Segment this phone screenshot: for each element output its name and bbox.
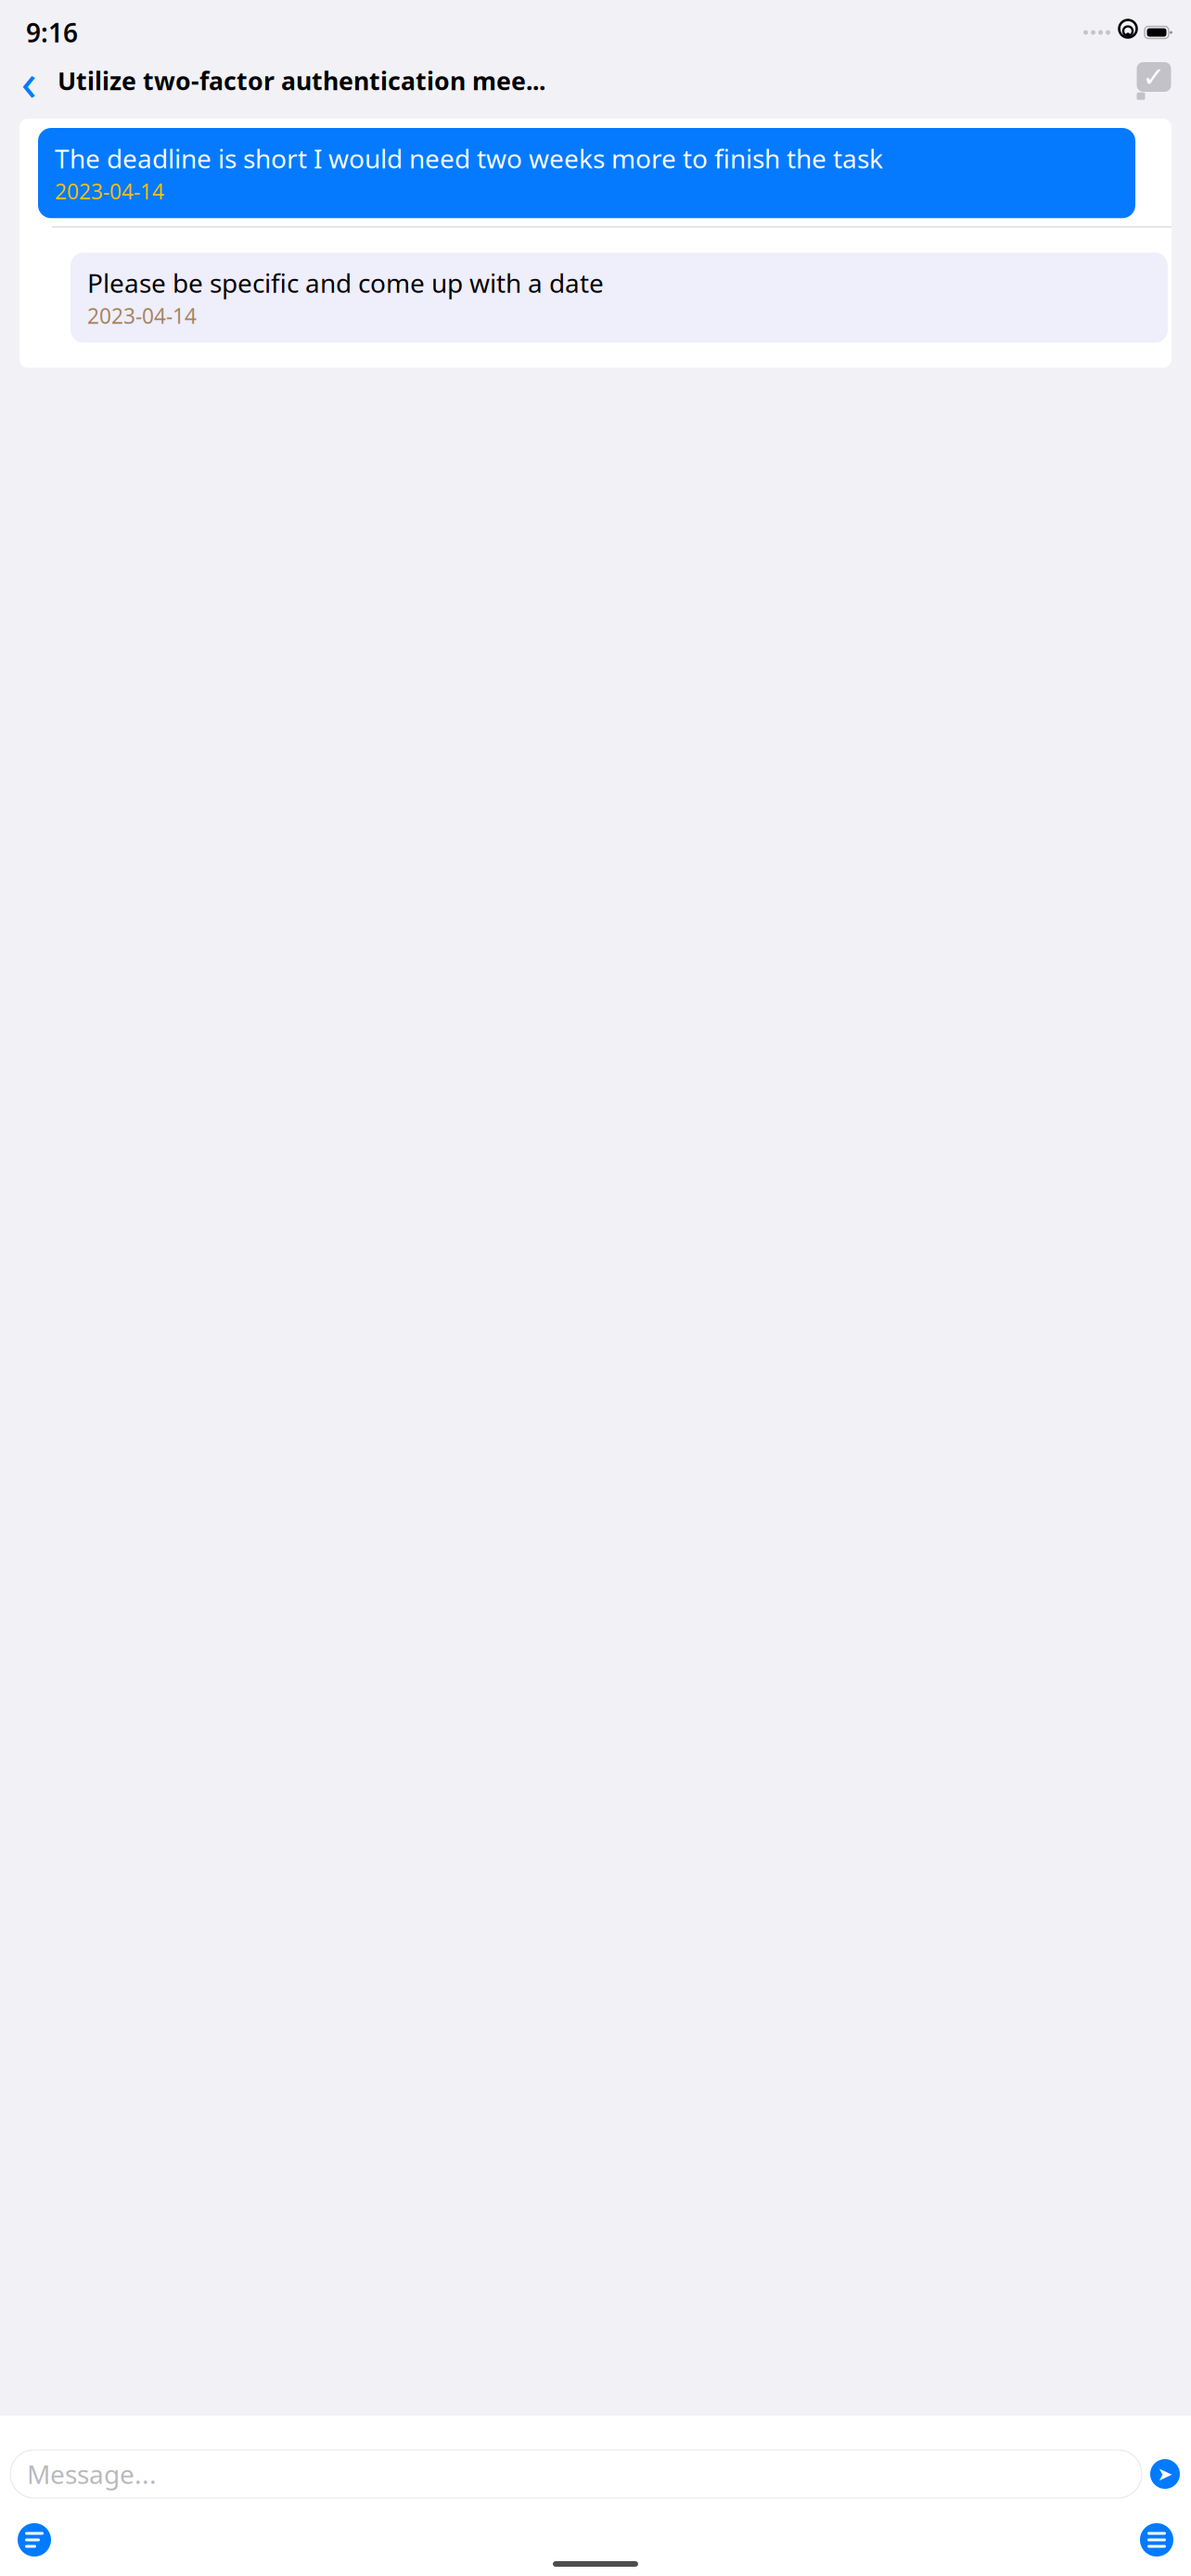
staticText: 2023-04-14 [55,177,164,205]
staticText: Message... [27,2457,157,2491]
staticText: ✓ [1142,62,1165,92]
button[interactable]: Message... [10,2450,1142,2498]
staticText: The deadline is short I would need two w… [55,141,883,175]
staticText: Please be specific and come up with a da… [87,265,604,300]
staticText: 9:16 [26,15,78,50]
staticText: 2023-04-14 [87,302,197,330]
button[interactable]: Please be specific and come up with a da… [70,252,1168,343]
button[interactable]: Mark complete [1135,60,1172,101]
staticText: ‹ [21,46,37,115]
staticText: ➤ [1157,2464,1173,2485]
button[interactable]: Menu [1138,2521,1175,2558]
button[interactable]: Filter [16,2521,53,2558]
button[interactable]: The deadline is short I would need two w… [38,128,1135,218]
staticText: Utilize two-factor authentication mee... [58,64,545,97]
button[interactable]: Back [9,60,48,101]
button[interactable]: Send [1150,2459,1180,2489]
